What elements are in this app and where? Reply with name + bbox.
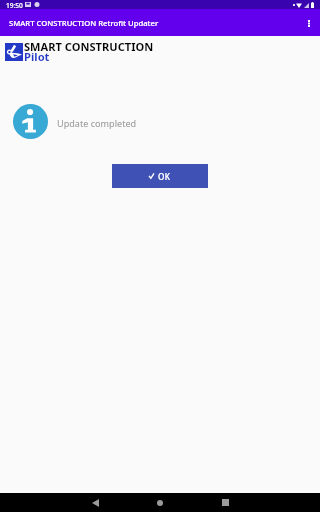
button[interactable]: OK: [112, 164, 208, 188]
button[interactable]: Recent apps: [214, 493, 236, 512]
staticText: Pilot: [24, 49, 50, 64]
staticText: SMART CONSTRUCTION: [24, 39, 154, 54]
button[interactable]: Back: [84, 493, 106, 512]
staticText: Update completed: [57, 117, 137, 129]
staticText: 19:50: [6, 1, 23, 10]
button[interactable]: Home: [149, 493, 171, 512]
button[interactable]: More options: [297, 11, 320, 35]
staticText: SMART CONSTRUCTION Retrofit Updater: [9, 18, 159, 28]
staticText: OK: [158, 171, 171, 182]
